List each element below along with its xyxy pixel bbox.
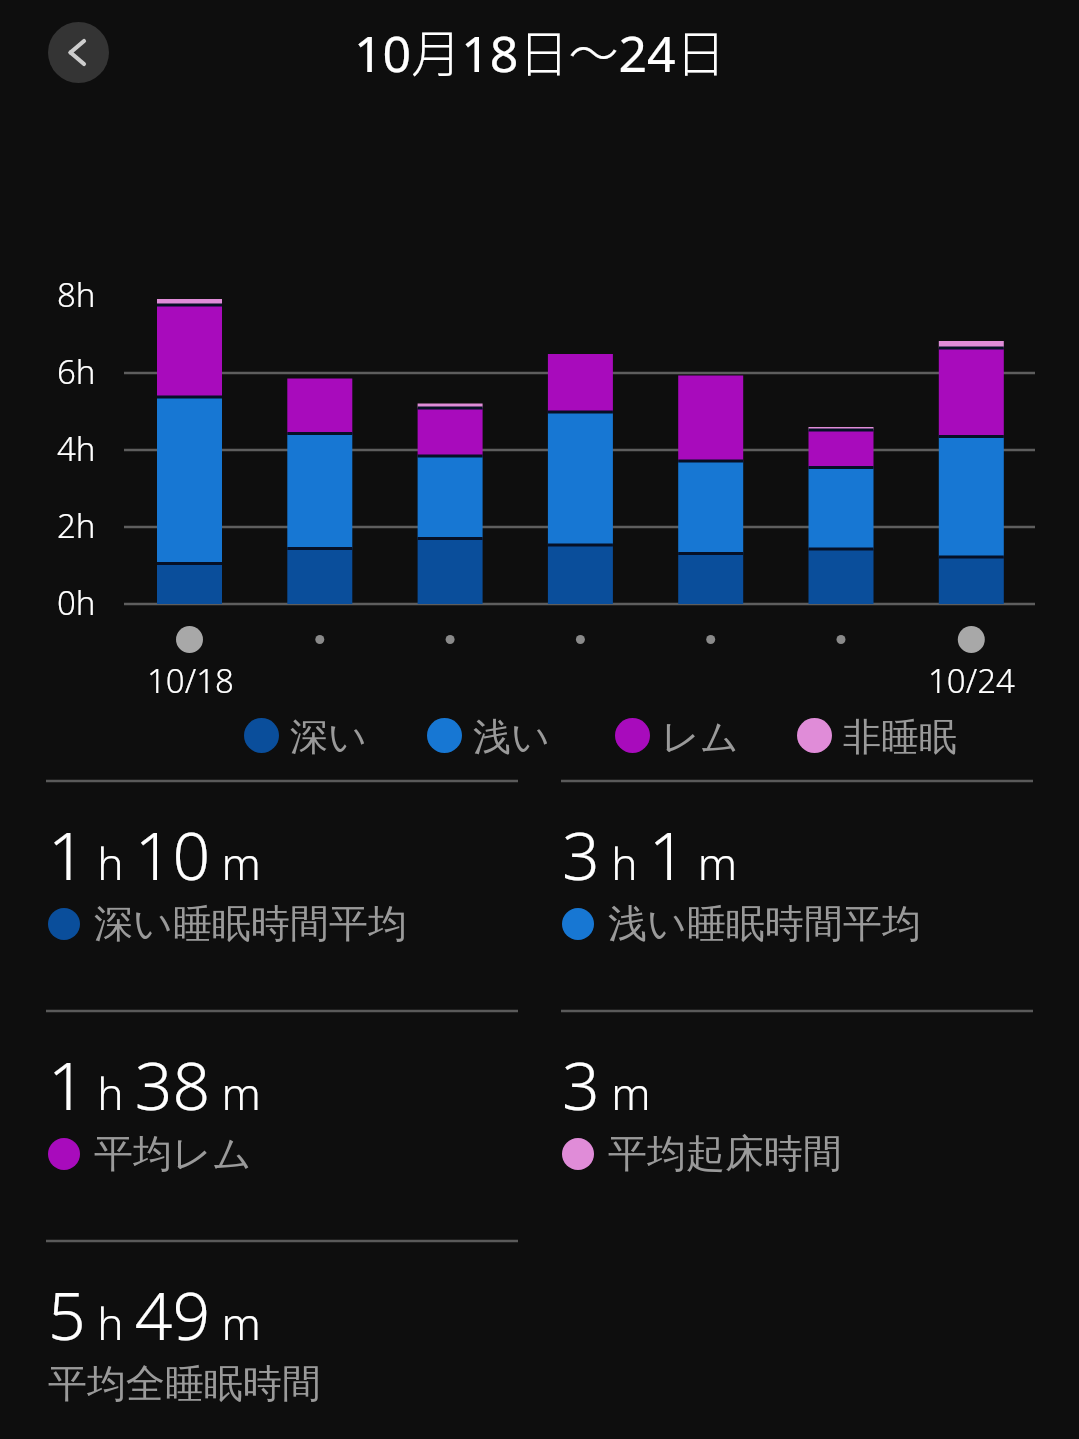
staticText: 平均レム: [94, 1129, 252, 1178]
staticText: 平均全睡眠時間: [48, 1359, 321, 1408]
staticText: 深い睡眠時間平均: [94, 899, 407, 948]
staticText: 深い: [290, 713, 367, 757]
staticText: 1 h 10 m: [48, 809, 261, 899]
staticText: 8h: [57, 272, 96, 317]
staticText: 浅い: [473, 713, 550, 757]
staticText: 浅い睡眠時間平均: [608, 899, 921, 948]
staticText: 10/24: [928, 658, 1015, 694]
staticText: 平均起床時間: [608, 1129, 842, 1178]
button[interactable]: Back: [48, 22, 109, 83]
staticText: 10月18日〜24日: [354, 14, 726, 87]
staticText: 6h: [57, 349, 96, 394]
staticText: 3 h 1 m: [562, 809, 738, 899]
staticText: 2h: [57, 503, 96, 548]
staticText: レム: [661, 713, 739, 757]
staticText: 4h: [57, 426, 96, 471]
staticText: 3 m: [562, 1039, 651, 1129]
staticText: 5 h 49 m: [48, 1269, 261, 1359]
staticText: 非睡眠: [843, 713, 957, 757]
staticText: 0h: [57, 580, 96, 625]
staticText: 1 h 38 m: [48, 1039, 261, 1129]
staticText: 10/18: [147, 658, 234, 694]
